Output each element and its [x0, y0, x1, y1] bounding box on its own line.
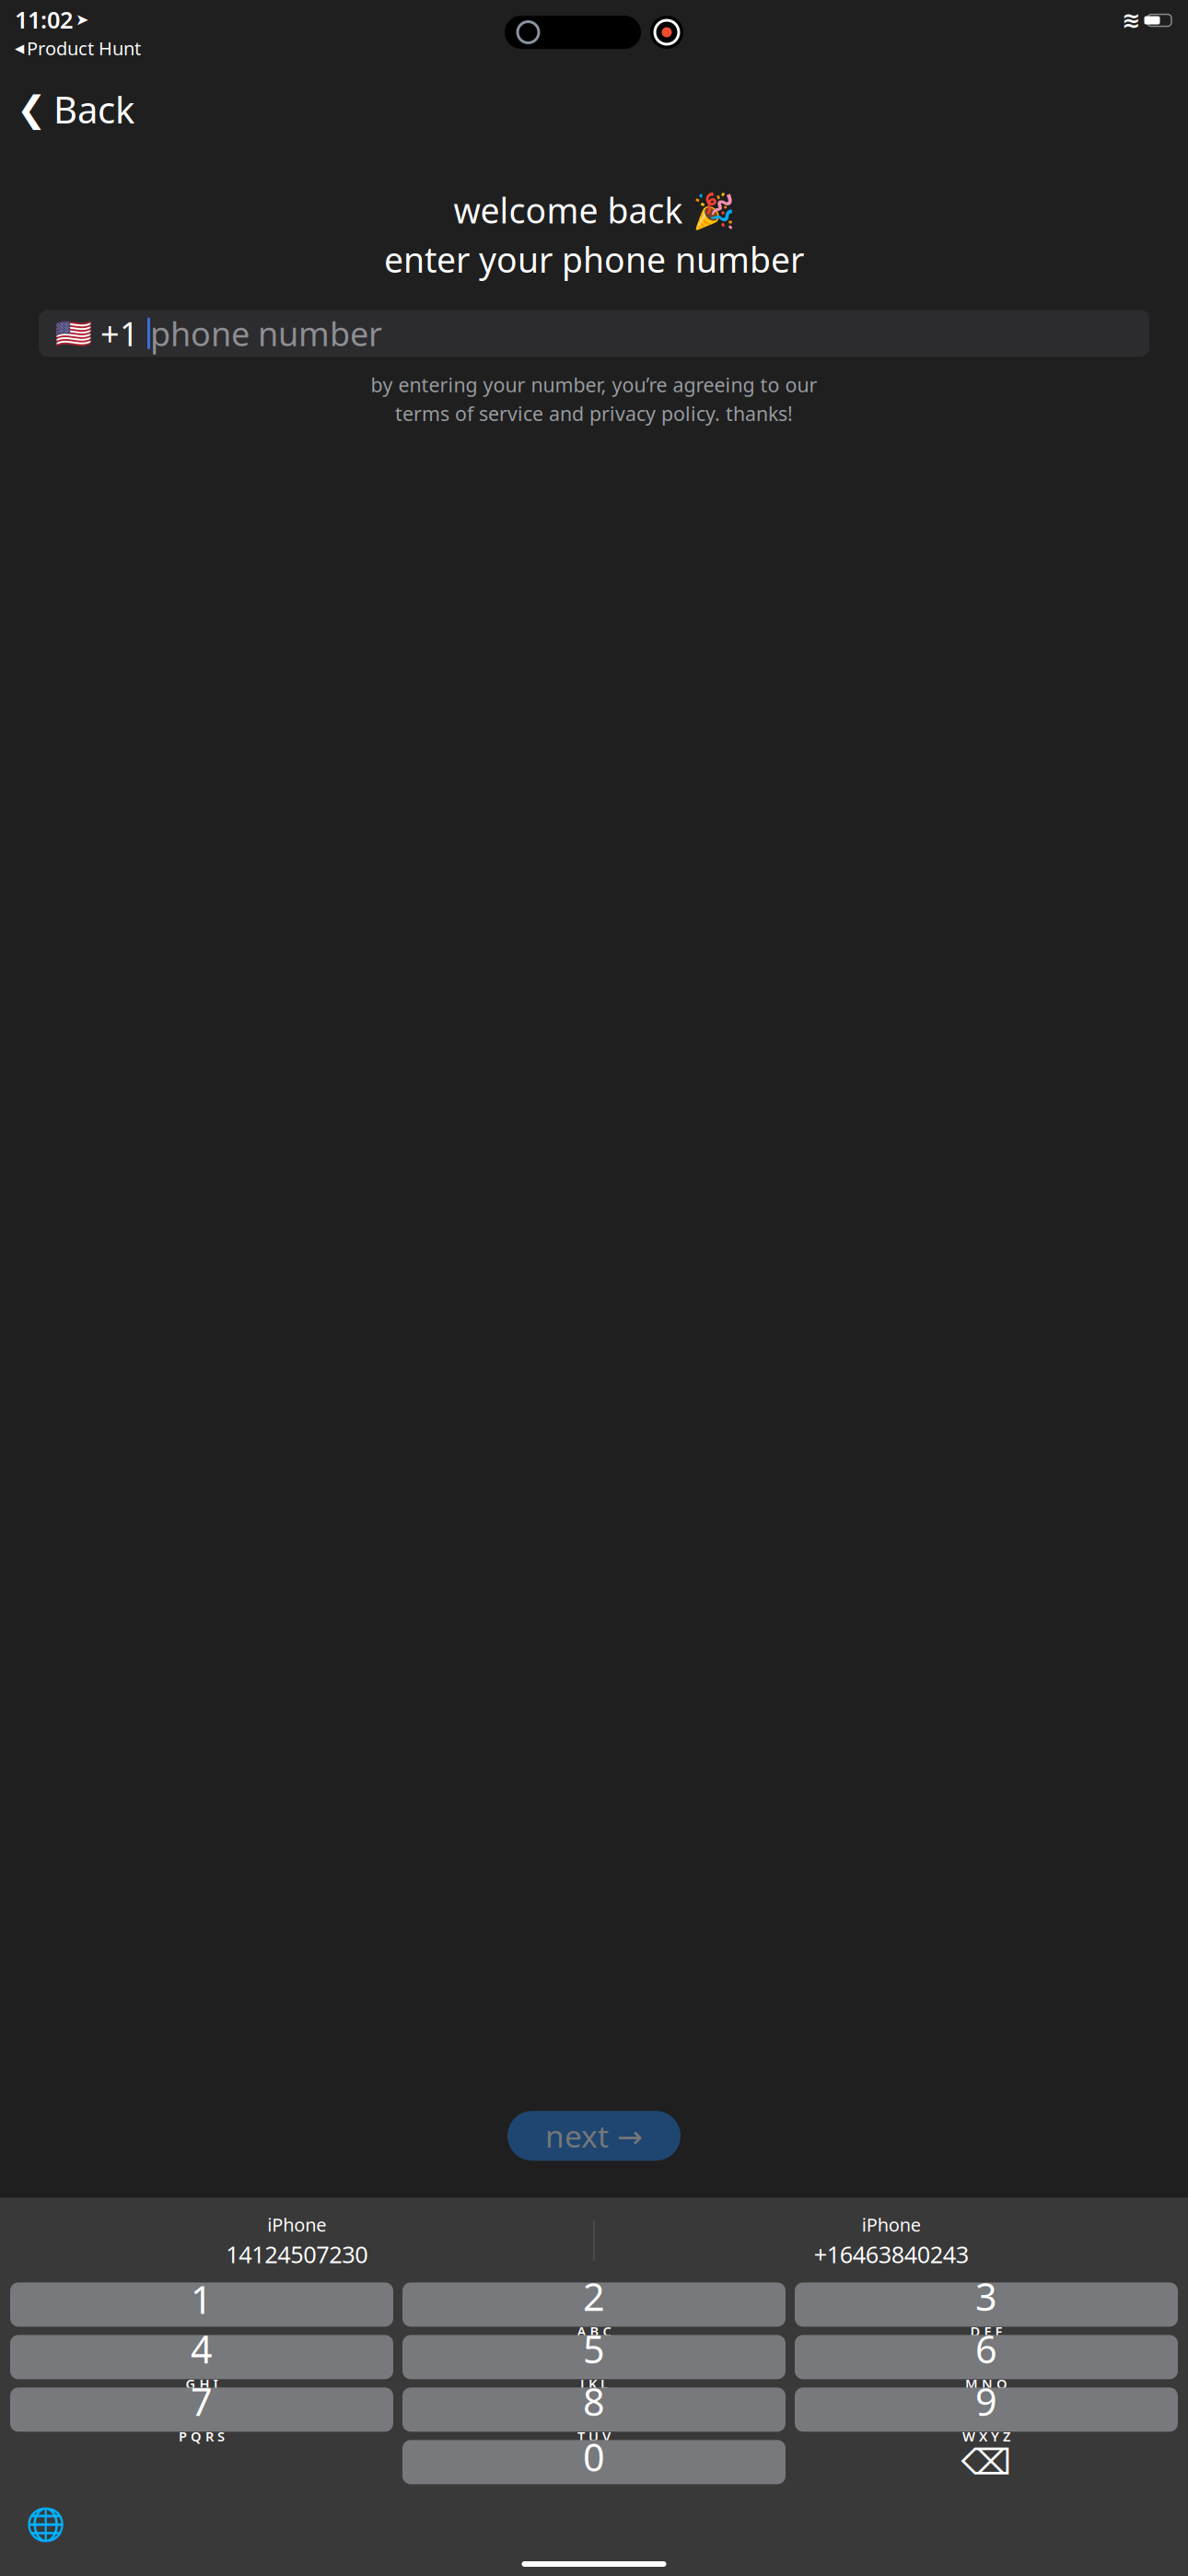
staticText: M N O [965, 2375, 1007, 2393]
button[interactable]: 3 [795, 2282, 1178, 2327]
staticText: A B C [577, 2322, 611, 2340]
button[interactable]: 0 [402, 2440, 786, 2484]
button[interactable]: Delete [795, 2440, 1178, 2484]
staticText: J K L [580, 2375, 608, 2393]
staticText: next → [545, 2115, 643, 2156]
staticText: iPhone [862, 2212, 921, 2237]
button[interactable]: next → [507, 2111, 681, 2161]
staticText: 7 [191, 2376, 213, 2426]
staticText: T U V [577, 2427, 611, 2445]
staticText: Back [53, 85, 134, 134]
button[interactable]: iPhone [0, 2205, 594, 2277]
button[interactable]: 6 [795, 2335, 1178, 2379]
staticText: 2 [583, 2271, 605, 2321]
staticText: 5 [583, 2323, 605, 2374]
staticText: ◀ [15, 41, 24, 55]
button[interactable]: 9 [795, 2387, 1178, 2432]
button[interactable]: 1 [10, 2282, 393, 2327]
staticText: 6 [975, 2323, 997, 2374]
staticText: welcome back 🎉 [454, 187, 734, 233]
staticText: +16463840243 [814, 2239, 969, 2269]
staticText: W X Y Z [962, 2427, 1010, 2445]
staticText: enter your phone number [384, 237, 804, 282]
staticText: 4 [191, 2323, 213, 2374]
button[interactable]: 4 [10, 2335, 393, 2379]
staticText: by entering your number, you’re agreeing… [371, 372, 817, 398]
staticText: 3 [975, 2271, 997, 2321]
staticText: 9 [975, 2376, 997, 2426]
button[interactable]: 5 [402, 2335, 786, 2379]
button[interactable]: 8 [402, 2387, 786, 2432]
staticText: 11:02 [15, 4, 73, 35]
button[interactable]: 🇺🇸 [39, 310, 1149, 357]
button[interactable]: 7 [10, 2387, 393, 2432]
staticText: ⌫ [961, 2442, 1012, 2482]
staticText: 1 [191, 2274, 213, 2324]
staticText: iPhone [267, 2212, 326, 2237]
staticText: Product Hunt [27, 36, 141, 60]
staticText: 0 [583, 2431, 605, 2482]
staticText: phone number [150, 311, 382, 355]
staticText: 🇺🇸 [55, 316, 92, 350]
button[interactable]: ◀ [15, 36, 141, 60]
staticText: 8 [583, 2376, 605, 2426]
staticText: ➤ [76, 11, 89, 29]
staticText: terms of service and privacy policy. tha… [395, 400, 793, 426]
staticText: ❮ [17, 89, 46, 129]
staticText: D E F [970, 2322, 1002, 2340]
button[interactable]: ❮ [0, 77, 151, 141]
button[interactable]: Next keyboard [17, 2497, 75, 2552]
staticText: P Q R S [179, 2427, 225, 2445]
button[interactable]: iPhone [594, 2205, 1188, 2277]
button[interactable]: 2 [402, 2282, 786, 2327]
staticText: 14124507230 [226, 2239, 368, 2269]
staticText: 🌐 [26, 2506, 65, 2543]
staticText: G H I [186, 2375, 218, 2393]
staticText: +1 [92, 311, 147, 355]
staticText: ≋ [1122, 8, 1140, 33]
